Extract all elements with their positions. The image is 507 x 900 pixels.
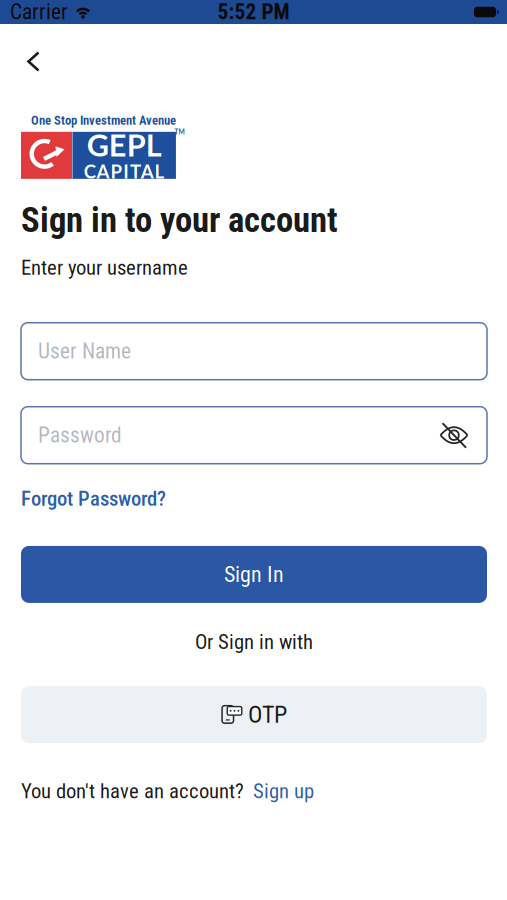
staticText: Enter your username bbox=[21, 255, 188, 280]
staticText: TM bbox=[174, 128, 184, 136]
button[interactable]: Back bbox=[21, 24, 40, 72]
staticText: Forgot Password? bbox=[21, 487, 166, 511]
button[interactable]: Forgot Password? bbox=[21, 487, 166, 511]
staticText: One Stop Investment Avenue bbox=[31, 113, 176, 128]
staticText: Sign In bbox=[224, 561, 284, 587]
staticText: OTP bbox=[248, 701, 287, 729]
staticText: Password bbox=[38, 423, 122, 448]
staticText: Carrier bbox=[10, 0, 68, 24]
button[interactable]: Show password bbox=[439, 422, 469, 448]
staticText: You don't have an account? bbox=[21, 779, 244, 803]
staticText: 5:52 PM bbox=[217, 0, 289, 24]
staticText: Sign in to your account bbox=[21, 200, 338, 240]
staticText: User Name bbox=[38, 339, 131, 364]
button[interactable]: Sign In bbox=[21, 546, 487, 603]
staticText: Sign up bbox=[253, 779, 314, 803]
staticText: GEPL bbox=[87, 126, 162, 163]
staticText: CAPITAL bbox=[84, 160, 165, 182]
button[interactable]: Sign up bbox=[253, 779, 314, 803]
staticText: Or Sign in with bbox=[195, 630, 313, 654]
button[interactable]: OTP bbox=[21, 686, 487, 743]
